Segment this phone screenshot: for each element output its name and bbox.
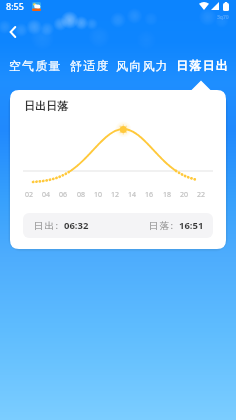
- button[interactable]: 日落日出: [176, 58, 229, 73]
- staticText: 日落日出: [176, 58, 229, 73]
- staticText: 日出:: [34, 219, 60, 232]
- staticText: 8:55: [6, 0, 24, 12]
- staticText: 日落:: [149, 219, 175, 232]
- staticText: 10: [94, 190, 103, 200]
- staticText: 20: [180, 190, 189, 200]
- staticText: 空气质量: [9, 58, 62, 73]
- button[interactable]: 舒适度: [70, 58, 110, 73]
- staticText: 12: [111, 190, 120, 200]
- staticText: 06: [59, 190, 68, 200]
- staticText: 18: [163, 190, 172, 200]
- staticText: 08: [77, 190, 86, 200]
- staticText: 16: [145, 190, 154, 200]
- button[interactable]: 空气质量: [9, 58, 62, 73]
- staticText: 06:32: [64, 219, 89, 232]
- staticText: 16:51: [179, 219, 204, 232]
- button[interactable]: 日出:: [23, 213, 213, 238]
- staticText: 日出日落: [24, 99, 68, 113]
- staticText: 3q70: [217, 14, 229, 21]
- staticText: 02: [25, 190, 34, 200]
- staticText: 04: [42, 190, 51, 200]
- button[interactable]: Back: [3, 22, 23, 42]
- staticText: 舒适度: [70, 58, 110, 73]
- staticText: 风向风力: [116, 58, 169, 73]
- staticText: 22: [197, 190, 206, 200]
- staticText: 14: [128, 190, 137, 200]
- button[interactable]: 风向风力: [116, 58, 169, 73]
